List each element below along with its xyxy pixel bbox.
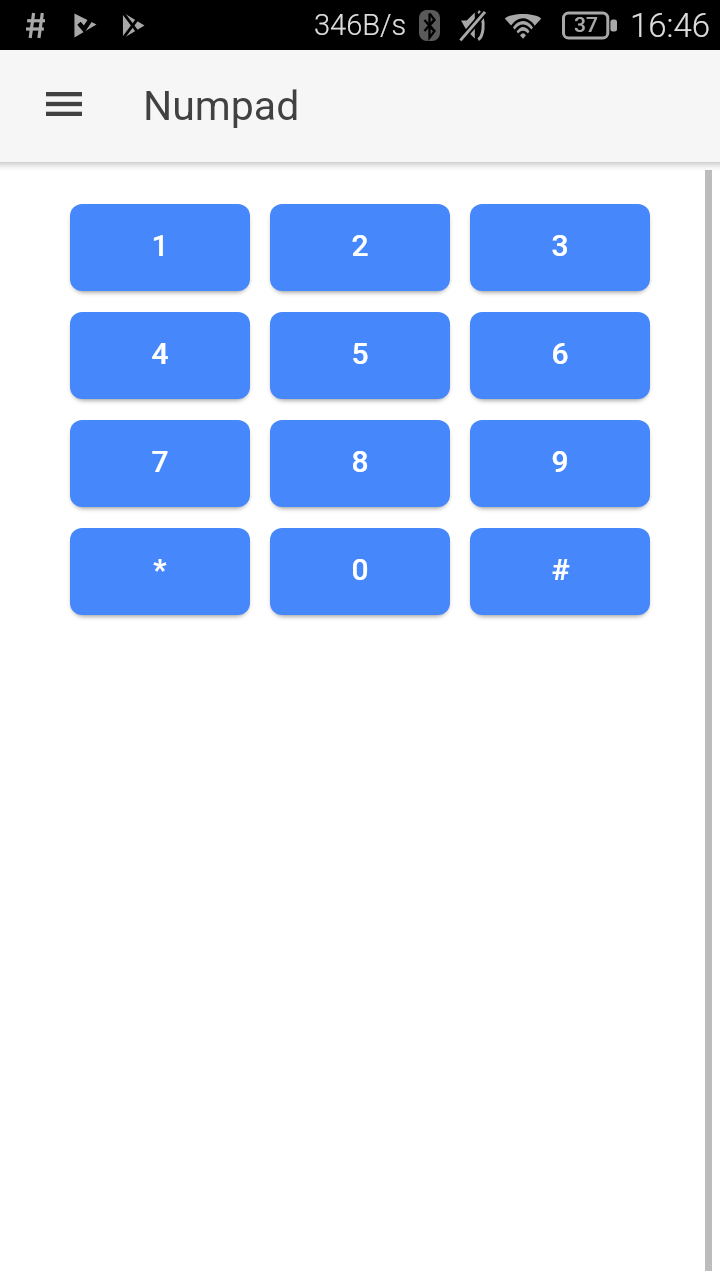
staticText: Numpad: [143, 82, 300, 130]
staticText: 0: [351, 552, 369, 587]
button[interactable]: 8: [270, 420, 450, 507]
staticText: 5: [351, 336, 369, 371]
staticText: 346B/s: [314, 8, 407, 42]
staticText: 1: [151, 228, 169, 263]
button[interactable]: 7: [70, 420, 250, 507]
button[interactable]: 6: [470, 312, 650, 399]
button[interactable]: 1: [70, 204, 250, 291]
staticText: 16:46: [630, 6, 711, 45]
staticText: 37: [574, 13, 598, 38]
staticText: 8: [351, 444, 369, 479]
button[interactable]: 9: [470, 420, 650, 507]
button[interactable]: 2: [270, 204, 450, 291]
button[interactable]: 4: [70, 312, 250, 399]
button[interactable]: *: [70, 528, 250, 615]
button[interactable]: #: [470, 528, 650, 615]
staticText: 3: [551, 228, 569, 263]
staticText: *: [153, 552, 167, 587]
button[interactable]: 0: [270, 528, 450, 615]
button[interactable]: 5: [270, 312, 450, 399]
staticText: 4: [151, 336, 169, 371]
staticText: 7: [151, 444, 169, 479]
staticText: 6: [551, 336, 569, 371]
button[interactable]: 3: [470, 204, 650, 291]
button[interactable]: Open navigation menu: [31, 73, 97, 139]
staticText: #: [551, 552, 570, 587]
staticText: 9: [551, 444, 569, 479]
staticText: 2: [351, 228, 369, 263]
